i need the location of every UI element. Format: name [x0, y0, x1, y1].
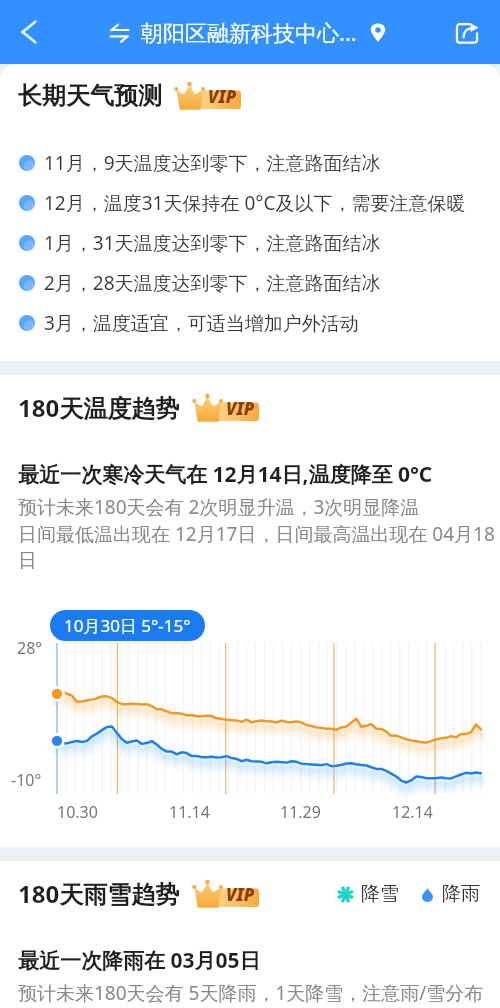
staticText: 10.30 — [57, 801, 98, 823]
button[interactable]: 降雪 — [339, 882, 399, 906]
staticText: 降雨 — [442, 882, 480, 906]
staticText: 11月，9天温度达到零下，注意路面结冰 — [44, 150, 381, 176]
staticText: 预计未来180天会有 2次明显升温，3次明显降温 日间最低温出现在 12月17日… — [18, 494, 495, 573]
button[interactable]: 3月，温度适宜，可适当增加户外活动 — [0, 303, 500, 343]
button[interactable]: 降雨 — [422, 882, 480, 906]
staticText: 11.29 — [280, 801, 321, 823]
button[interactable]: 11月，9天温度达到零下，注意路面结冰 — [0, 143, 500, 183]
button[interactable]: 10月30日 5°-15° — [50, 610, 205, 641]
staticText: 最近一次降雨在 03月05日 — [18, 946, 261, 975]
staticText: 12.14 — [392, 801, 433, 823]
staticText: 180天雨雪趋势 — [18, 877, 180, 910]
button[interactable]: Share — [445, 10, 489, 54]
button[interactable]: 2月，28天温度达到零下，注意路面结冰 — [0, 263, 500, 303]
staticText: 预计未来180天会有 5天降雨，1天降雪，注意雨/雪分布 — [18, 980, 484, 1006]
staticText: 朝阳区融新科技中心... — [141, 17, 357, 47]
staticText: 降雪 — [361, 882, 399, 906]
staticText: 最近一次寒冷天气在 12月14日,温度降至 0°C — [18, 460, 433, 489]
staticText: 3月，温度适宜，可适当增加户外活动 — [44, 310, 359, 336]
staticText: -10° — [11, 769, 42, 791]
staticText: 12月，温度31天保持在 0°C及以下，需要注意保暖 — [44, 190, 466, 216]
staticText: VIP — [226, 397, 255, 420]
staticText: 28° — [17, 637, 43, 659]
staticText: 10月30日 5°-15° — [64, 614, 191, 637]
staticText: VIP — [208, 85, 237, 108]
staticText: VIP — [226, 883, 255, 906]
staticText: 180天温度趋势 — [18, 391, 180, 424]
staticText: 2月，28天温度达到零下，注意路面结冰 — [44, 270, 381, 296]
button[interactable]: Back — [5, 8, 53, 56]
staticText: 长期天气预测 — [18, 81, 162, 111]
button[interactable]: 12月，温度31天保持在 0°C及以下，需要注意保暖 — [0, 183, 500, 223]
button[interactable]: 1月，31天温度达到零下，注意路面结冰 — [0, 223, 500, 263]
staticText: 1月，31天温度达到零下，注意路面结冰 — [44, 230, 381, 256]
staticText: 11.14 — [169, 801, 210, 823]
